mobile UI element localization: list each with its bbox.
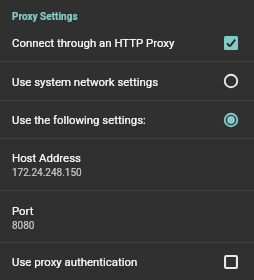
button[interactable]: Use the following settings: [0, 101, 254, 138]
staticText: Proxy Settings [12, 11, 78, 23]
staticText: 8080 [12, 220, 35, 232]
other: Use the following settings [223, 112, 239, 128]
staticText: Use proxy authentication [12, 255, 138, 268]
button[interactable]: Use system network settings [0, 62, 254, 100]
button[interactable]: Use proxy authentication [0, 243, 254, 280]
other: Connect through an HTTP Proxy [223, 35, 239, 51]
button[interactable]: Connect through an HTTP Proxy [0, 24, 254, 61]
button[interactable]: Port [0, 191, 254, 242]
staticText: 172.24.248.150 [12, 167, 82, 179]
staticText: Use system network settings [12, 75, 159, 88]
other: Use proxy authentication [223, 254, 239, 270]
staticText: Host Address [12, 151, 81, 164]
staticText: Use the following settings: [12, 113, 146, 126]
staticText: Port [12, 204, 34, 217]
other: Use system network settings [223, 73, 239, 89]
button[interactable]: Host Address [0, 139, 254, 190]
staticText: Connect through an HTTP Proxy [12, 36, 175, 49]
